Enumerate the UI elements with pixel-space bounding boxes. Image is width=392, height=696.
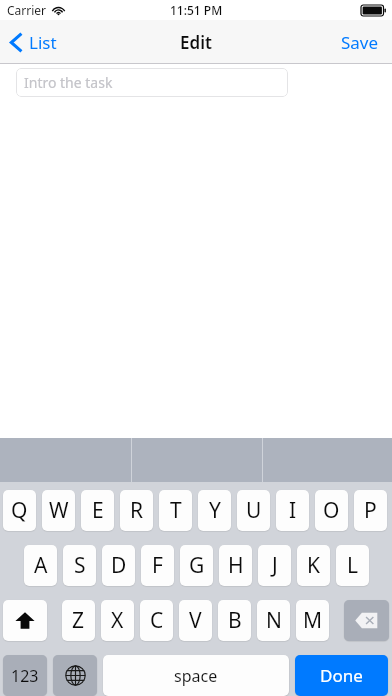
button[interactable]: L — [336, 545, 369, 586]
button[interactable]: Save — [328, 20, 392, 64]
staticText: Z — [72, 606, 85, 635]
staticText: Save — [341, 31, 379, 54]
button[interactable]: Done — [295, 655, 388, 696]
button[interactable]: T — [159, 490, 192, 531]
staticText: H — [228, 551, 244, 580]
staticText: E — [92, 496, 104, 525]
staticText: G — [189, 551, 205, 580]
staticText: C — [150, 606, 164, 635]
staticText: N — [266, 606, 282, 635]
staticText: O — [323, 496, 340, 525]
button[interactable]: 123 — [3, 655, 47, 696]
staticText: 123 — [11, 665, 39, 687]
staticText: I — [289, 496, 297, 525]
button[interactable]: O — [315, 490, 348, 531]
staticText: 11:51 PM — [170, 2, 223, 18]
staticText: Intro the task — [24, 73, 113, 92]
staticText: Carrier — [7, 2, 47, 18]
staticText: V — [189, 606, 202, 635]
staticText: R — [130, 496, 144, 525]
staticText: P — [364, 496, 377, 525]
button[interactable]: Shift — [3, 600, 47, 641]
button[interactable]: H — [219, 545, 252, 586]
button[interactable]: Intro the task — [16, 68, 288, 97]
staticText: Q — [11, 496, 28, 525]
staticText: W — [49, 496, 69, 525]
button[interactable]: I — [276, 490, 309, 531]
staticText: Done — [320, 664, 363, 687]
staticText: S — [74, 551, 86, 580]
button[interactable]: space — [103, 655, 289, 696]
staticText: U — [246, 496, 262, 525]
button[interactable]: Y — [198, 490, 231, 531]
button[interactable]: A — [24, 545, 57, 586]
button[interactable]: F — [141, 545, 174, 586]
staticText: L — [347, 551, 359, 580]
button[interactable]: D — [102, 545, 135, 586]
staticText: F — [152, 551, 163, 580]
button[interactable]: P — [354, 490, 387, 531]
button[interactable]: J — [258, 545, 291, 586]
staticText: J — [272, 551, 278, 580]
button[interactable]: K — [297, 545, 330, 586]
button[interactable]: W — [42, 490, 75, 531]
button[interactable]: N — [257, 600, 290, 641]
staticText: D — [111, 551, 127, 580]
staticText: Y — [209, 496, 221, 525]
button[interactable]: V — [179, 600, 212, 641]
button[interactable]: G — [180, 545, 213, 586]
staticText: M — [303, 606, 323, 635]
staticText: space — [174, 665, 218, 687]
staticText: B — [228, 606, 242, 635]
button[interactable]: C — [140, 600, 173, 641]
button[interactable]: S — [63, 545, 96, 586]
button[interactable]: Q — [3, 490, 36, 531]
staticText: T — [170, 496, 182, 525]
button[interactable]: Next keyboard — [53, 655, 97, 696]
button[interactable]: Z — [62, 600, 95, 641]
staticText: X — [111, 606, 124, 635]
button[interactable]: X — [101, 600, 134, 641]
button[interactable]: Backspace — [344, 600, 389, 641]
button[interactable]: List — [0, 20, 67, 64]
staticText: A — [34, 551, 48, 580]
button[interactable]: R — [120, 490, 153, 531]
staticText: List — [29, 31, 57, 54]
staticText: K — [307, 551, 320, 580]
staticText: Edit — [180, 31, 212, 54]
button[interactable]: M — [296, 600, 329, 641]
button[interactable]: E — [81, 490, 114, 531]
button[interactable]: U — [237, 490, 270, 531]
button[interactable]: B — [218, 600, 251, 641]
